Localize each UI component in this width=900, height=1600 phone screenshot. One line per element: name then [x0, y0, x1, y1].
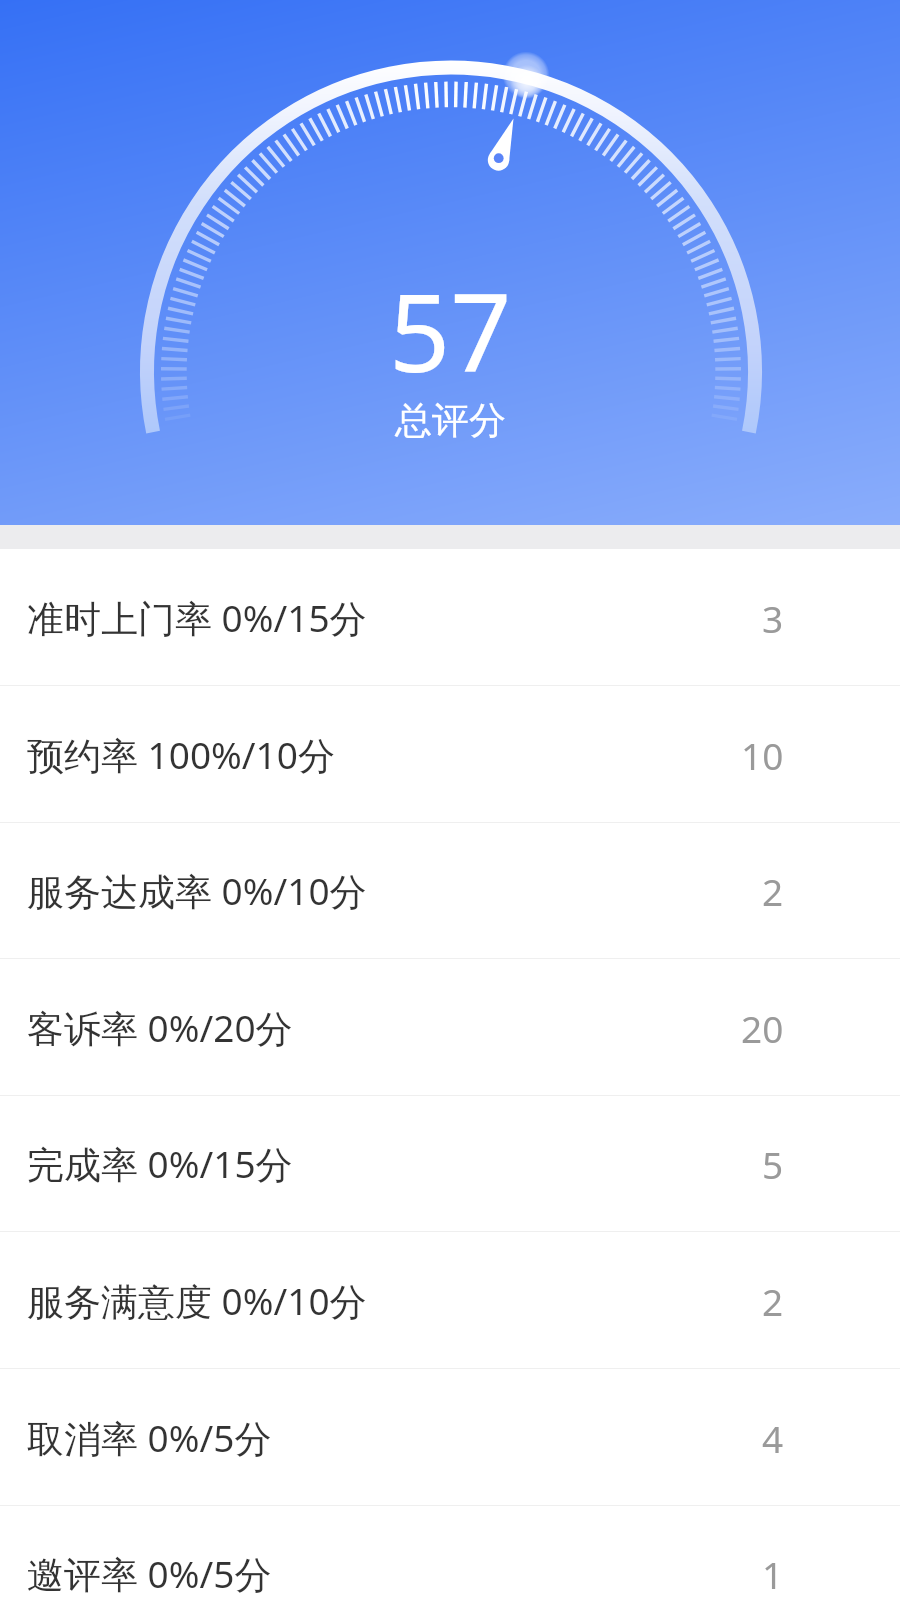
staticText: 2	[762, 1276, 784, 1326]
staticText: 1	[762, 1549, 784, 1599]
staticText: 5	[762, 1139, 784, 1189]
button[interactable]: 预约率 100%/10分	[0, 686, 900, 823]
button[interactable]: 完成率 0%/15分	[0, 1095, 900, 1232]
button[interactable]: 准时上门率 0%/15分	[0, 549, 900, 686]
staticText: 2	[762, 866, 784, 916]
staticText: 10	[741, 730, 784, 780]
staticText: 服务满意度 0%/10分	[27, 1275, 367, 1326]
staticText: 取消率 0%/5分	[27, 1412, 272, 1463]
staticText: 预约率 100%/10分	[27, 729, 335, 780]
staticText: 57	[389, 258, 512, 404]
staticText: 服务达成率 0%/10分	[27, 865, 367, 916]
button[interactable]: 服务满意度 0%/10分	[0, 1232, 900, 1369]
other: 总评分仪表盘 57	[0, 0, 900, 525]
staticText: 准时上门率 0%/15分	[27, 592, 367, 643]
button[interactable]: 取消率 0%/5分	[0, 1369, 900, 1506]
staticText: 完成率 0%/15分	[27, 1138, 293, 1189]
staticText: 总评分	[395, 397, 506, 444]
staticText: 邀评率 0%/5分	[27, 1548, 272, 1599]
staticText: 客诉率 0%/20分	[27, 1002, 293, 1053]
staticText: 3	[762, 593, 784, 643]
staticText: 4	[762, 1413, 784, 1463]
button[interactable]: 客诉率 0%/20分	[0, 959, 900, 1096]
staticText: 20	[741, 1003, 784, 1053]
button[interactable]: 邀评率 0%/5分	[0, 1505, 900, 1600]
button[interactable]: 服务达成率 0%/10分	[0, 822, 900, 959]
